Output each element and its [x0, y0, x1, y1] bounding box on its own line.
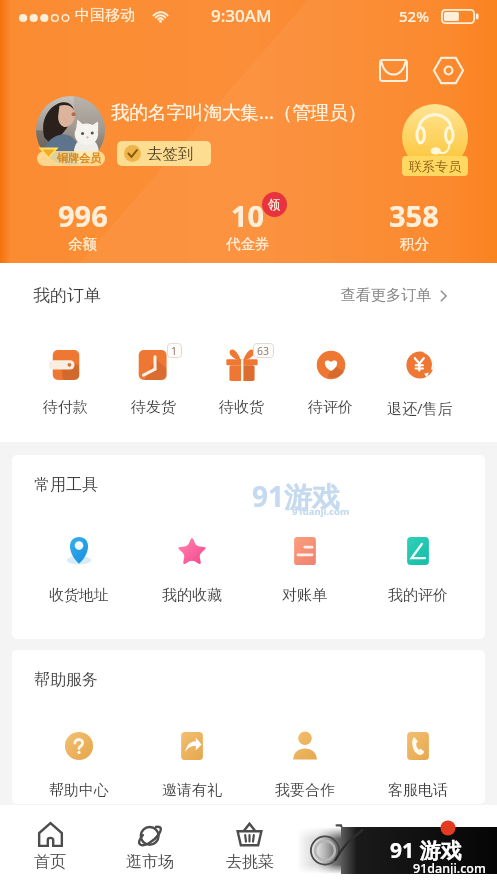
- staticText: 我要合作: [275, 781, 335, 800]
- staticText: 我的收藏: [162, 586, 222, 605]
- staticText: 待评价: [308, 398, 353, 417]
- button[interactable]: Messages: [371, 48, 415, 92]
- button[interactable]: 逛市场: [100, 805, 200, 883]
- button[interactable]: 联系专员: [400, 104, 470, 176]
- button[interactable]: 996: [0, 196, 165, 252]
- button[interactable]: 客服电话: [361, 730, 474, 800]
- button[interactable]: 我的评价: [361, 535, 474, 605]
- staticText: 9:30AM: [211, 4, 272, 27]
- button[interactable]: 待付款: [21, 348, 109, 417]
- staticText: 积分: [400, 235, 429, 252]
- staticText: 常用工具: [34, 475, 98, 495]
- staticText: 余额: [68, 235, 97, 252]
- staticText: 10: [231, 196, 265, 235]
- button[interactable]: 待评价: [286, 348, 375, 417]
- button[interactable]: 我的: [398, 805, 497, 883]
- staticText: 邀请有礼: [162, 781, 222, 800]
- staticText: 领: [268, 197, 281, 213]
- staticText: 去挑菜: [226, 852, 274, 872]
- staticText: 代金券: [226, 235, 270, 252]
- staticText: 铜牌会员: [57, 151, 101, 165]
- staticText: 52%: [399, 6, 429, 26]
- staticText: 91danji.com: [413, 860, 486, 877]
- staticText: 中国移动: [75, 6, 135, 25]
- staticText: 客服电话: [388, 781, 448, 800]
- staticText: 查看更多订单: [341, 286, 431, 305]
- staticText: 91danji.com: [292, 505, 350, 518]
- staticText: 去签到: [147, 144, 194, 164]
- staticText: 逛市场: [126, 852, 174, 872]
- staticText: 91 游戏: [390, 836, 462, 865]
- staticText: 996: [58, 196, 108, 235]
- button[interactable]: 对账单: [248, 535, 361, 605]
- button[interactable]: 10: [165, 196, 331, 252]
- button[interactable]: 收货地址: [23, 535, 135, 605]
- button[interactable]: 我的收藏: [135, 535, 248, 605]
- button[interactable]: 358: [331, 196, 497, 252]
- staticText: 1: [171, 344, 178, 358]
- button[interactable]: Avatar: [36, 96, 105, 165]
- staticText: 退还/售后: [387, 398, 453, 418]
- staticText: 我的订单: [33, 285, 101, 306]
- button[interactable]: 去挑菜: [200, 805, 299, 883]
- button[interactable]: 首页: [0, 805, 100, 883]
- button[interactable]: 邀请有礼: [135, 730, 248, 800]
- staticText: 对账单: [282, 586, 327, 605]
- staticText: 63: [257, 344, 270, 358]
- button[interactable]: 1: [109, 348, 197, 417]
- button[interactable]: 退还/售后: [375, 348, 464, 418]
- staticText: 待收货: [219, 398, 264, 417]
- button[interactable]: 查看更多订单: [341, 286, 447, 305]
- button[interactable]: 帮助中心: [23, 730, 135, 800]
- button[interactable]: 购物车: [299, 805, 398, 883]
- staticText: 收货地址: [49, 586, 109, 605]
- button[interactable]: 63: [197, 348, 286, 417]
- staticText: 待发货: [131, 398, 176, 417]
- button[interactable]: 去签到: [117, 141, 211, 166]
- button[interactable]: 我要合作: [248, 730, 361, 800]
- staticText: 91游戏: [252, 477, 341, 515]
- button[interactable]: Settings: [426, 48, 470, 92]
- staticText: 待付款: [43, 398, 88, 417]
- staticText: 首页: [34, 852, 66, 872]
- staticText: 我的: [432, 852, 464, 872]
- staticText: 我的评价: [388, 586, 448, 605]
- staticText: 帮助服务: [34, 670, 98, 690]
- staticText: 联系专员: [409, 158, 461, 174]
- staticText: 购物车: [325, 852, 373, 872]
- staticText: 我的名字叫淘大集...（管理员）: [111, 99, 367, 124]
- staticText: 358: [389, 196, 439, 235]
- staticText: 帮助中心: [49, 781, 109, 800]
